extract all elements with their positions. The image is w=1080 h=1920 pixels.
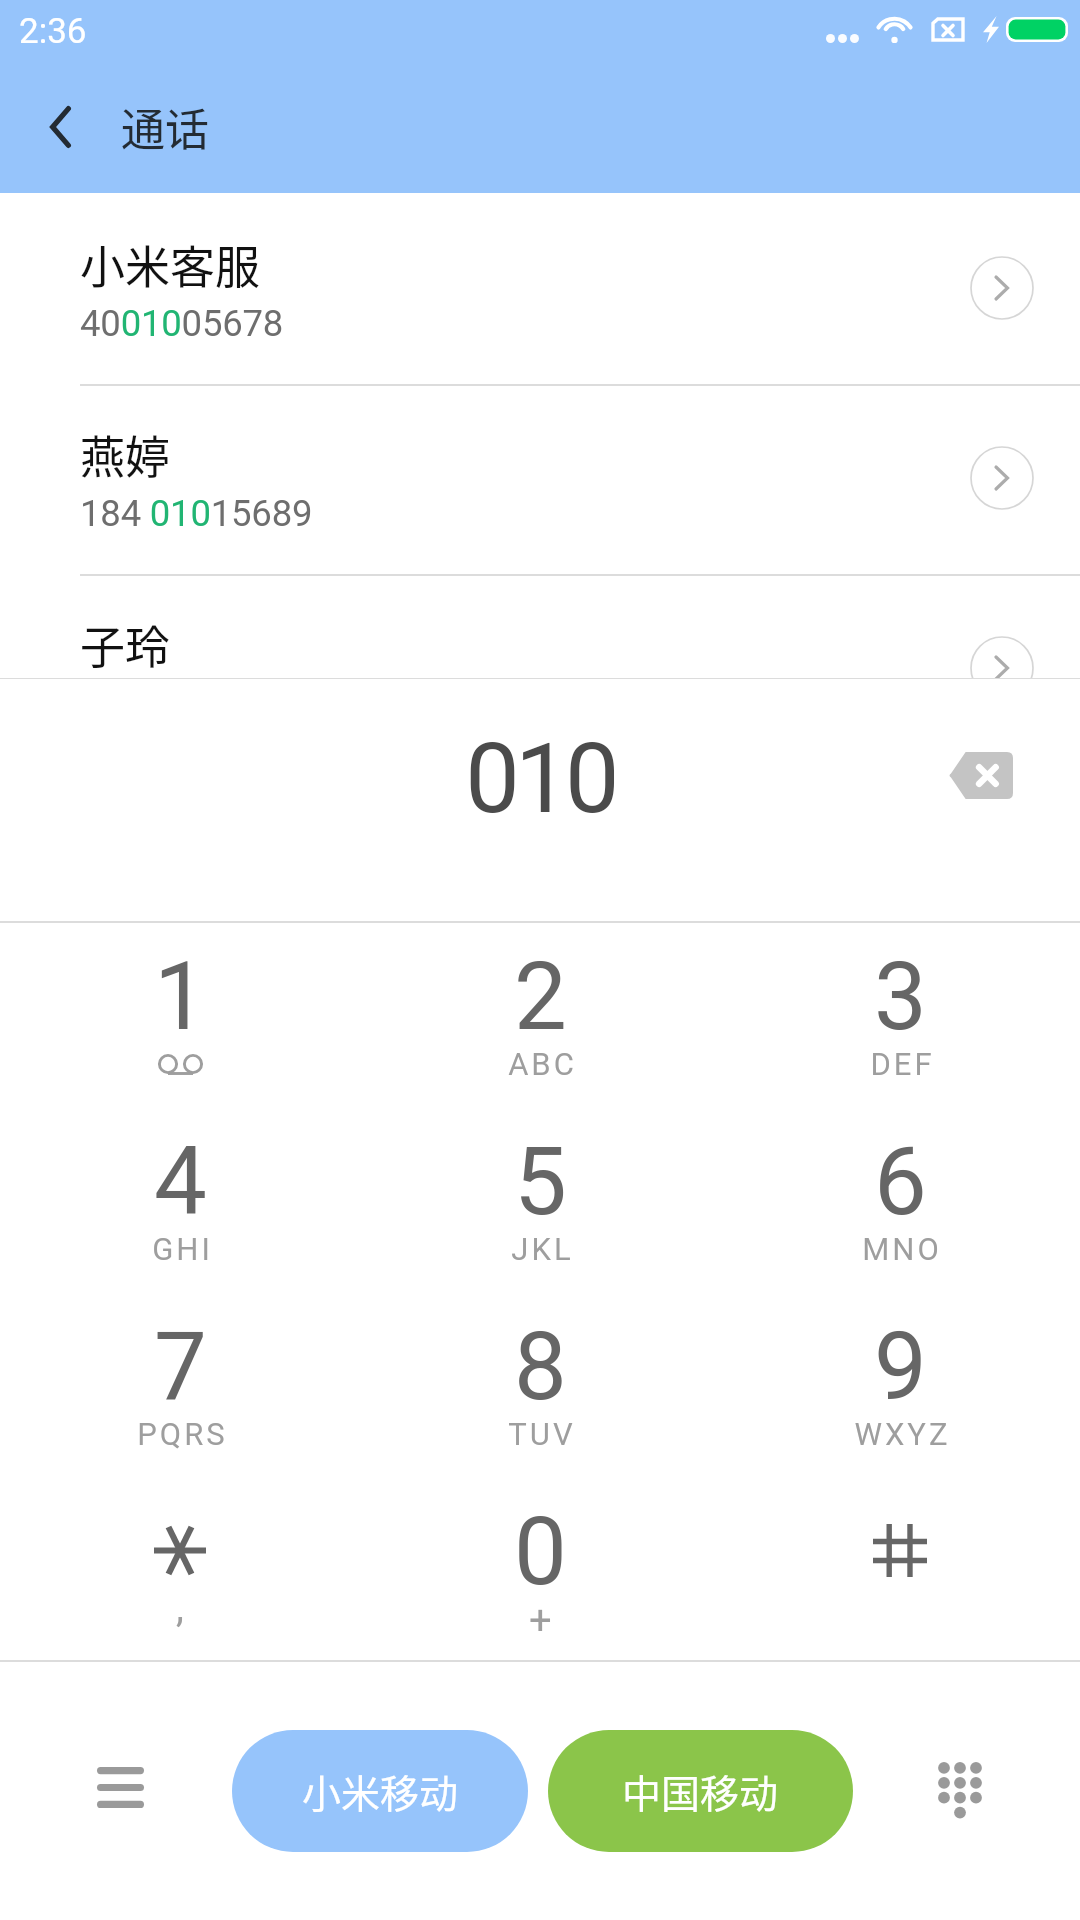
staticText: 0	[514, 1497, 567, 1607]
button[interactable]: Contact details	[970, 446, 1034, 510]
staticText: MNO	[862, 1231, 942, 1267]
staticText: 2:36	[19, 11, 87, 52]
button[interactable]: Contact details	[970, 636, 1034, 679]
button[interactable]: Key 0	[360, 1476, 720, 1661]
button[interactable]: Key 2	[360, 921, 720, 1106]
staticText: WXYZ	[854, 1416, 951, 1452]
button[interactable]: Key 5	[360, 1106, 720, 1291]
button[interactable]: Backspace	[936, 731, 1026, 819]
button[interactable]: 子玲	[0, 573, 1080, 679]
button[interactable]: 燕婷	[0, 383, 1080, 573]
staticText: GHI	[152, 1231, 213, 1267]
staticText: 3	[874, 942, 927, 1052]
staticText: +	[529, 1597, 552, 1644]
button[interactable]: Key 8	[360, 1291, 720, 1476]
staticText: 1	[154, 942, 207, 1052]
button[interactable]: Contact details	[970, 256, 1034, 320]
button[interactable]: 小米客服	[0, 193, 1080, 383]
staticText: 6	[874, 1127, 927, 1237]
staticText: PQRS	[137, 1416, 228, 1452]
staticText: 子玲	[80, 612, 171, 677]
staticText: ABC	[508, 1046, 577, 1082]
staticText: DEF	[870, 1046, 935, 1082]
staticText: 中国移动	[622, 1763, 779, 1819]
staticText: JKL	[511, 1231, 574, 1267]
staticText: 4001005678	[80, 302, 284, 345]
staticText: 010	[465, 722, 615, 836]
button[interactable]: Key 7	[0, 1291, 360, 1476]
staticText: 小米客服	[80, 232, 261, 297]
staticText: 184 01015689	[80, 492, 313, 535]
button[interactable]: 中国移动	[548, 1730, 853, 1852]
button[interactable]: Key 1	[0, 921, 360, 1106]
staticText: TUV	[508, 1416, 576, 1452]
button[interactable]: Star key	[0, 1476, 360, 1661]
staticText: 燕婷	[80, 422, 171, 487]
button[interactable]: Key 9	[720, 1291, 1080, 1476]
staticText: 7	[154, 1312, 207, 1422]
staticText: 5	[514, 1127, 567, 1237]
staticText: 4	[154, 1127, 207, 1237]
staticText: 小米移动	[302, 1763, 459, 1819]
button[interactable]: Back	[24, 67, 96, 187]
staticText: 9	[874, 1312, 927, 1422]
button[interactable]: Key 4	[0, 1106, 360, 1291]
staticText: ,	[176, 1584, 184, 1631]
button[interactable]: 小米移动	[232, 1730, 528, 1852]
button[interactable]: Call log menu	[50, 1662, 190, 1920]
staticText: 通话	[121, 95, 209, 159]
button[interactable]: Pound key	[720, 1476, 1080, 1661]
button[interactable]: Dial pad	[890, 1662, 1030, 1920]
staticText: 8	[514, 1312, 567, 1422]
button[interactable]: Key 6	[720, 1106, 1080, 1291]
button[interactable]: Key 3	[720, 921, 1080, 1106]
staticText: 2	[514, 942, 567, 1052]
